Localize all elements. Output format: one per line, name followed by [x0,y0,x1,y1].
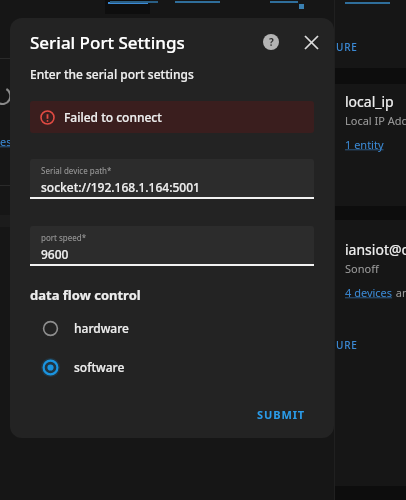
staticText: Serial device path* [41,165,112,176]
button[interactable]: Help [254,25,288,59]
staticText: data flow control [30,286,141,304]
staticText: 4 devices [345,285,393,300]
staticText: URE [336,40,358,54]
button[interactable]: hardware [30,312,314,344]
staticText: Sonoff [345,261,379,276]
staticText: port speed* [41,232,87,243]
staticText: Failed to connect [64,109,162,125]
staticText: ? [269,35,274,49]
staticText: 1 entity [345,137,384,152]
staticText: URE [336,338,358,352]
staticText: software [74,359,125,375]
button[interactable]: SUBMIT [249,401,314,428]
staticText: Serial Port Settings [30,31,185,54]
button[interactable]: software [30,351,314,383]
staticText: Enter the serial port settings [30,66,194,82]
staticText: es [0,134,12,149]
staticText: socket://192.168.1.164:5001 [41,179,200,195]
button[interactable]: port speed* [30,226,314,264]
button[interactable]: Serial device path* [30,159,314,197]
staticText: Local IP Add [345,113,406,128]
staticText: hardware [74,320,129,336]
staticText: iansiot@ou [345,240,406,259]
staticText: local_ip [345,92,394,111]
staticText: SUBMIT [257,407,306,422]
button[interactable]: Close [294,25,328,59]
staticText: an [393,285,406,300]
staticText: 9600 [41,246,69,262]
